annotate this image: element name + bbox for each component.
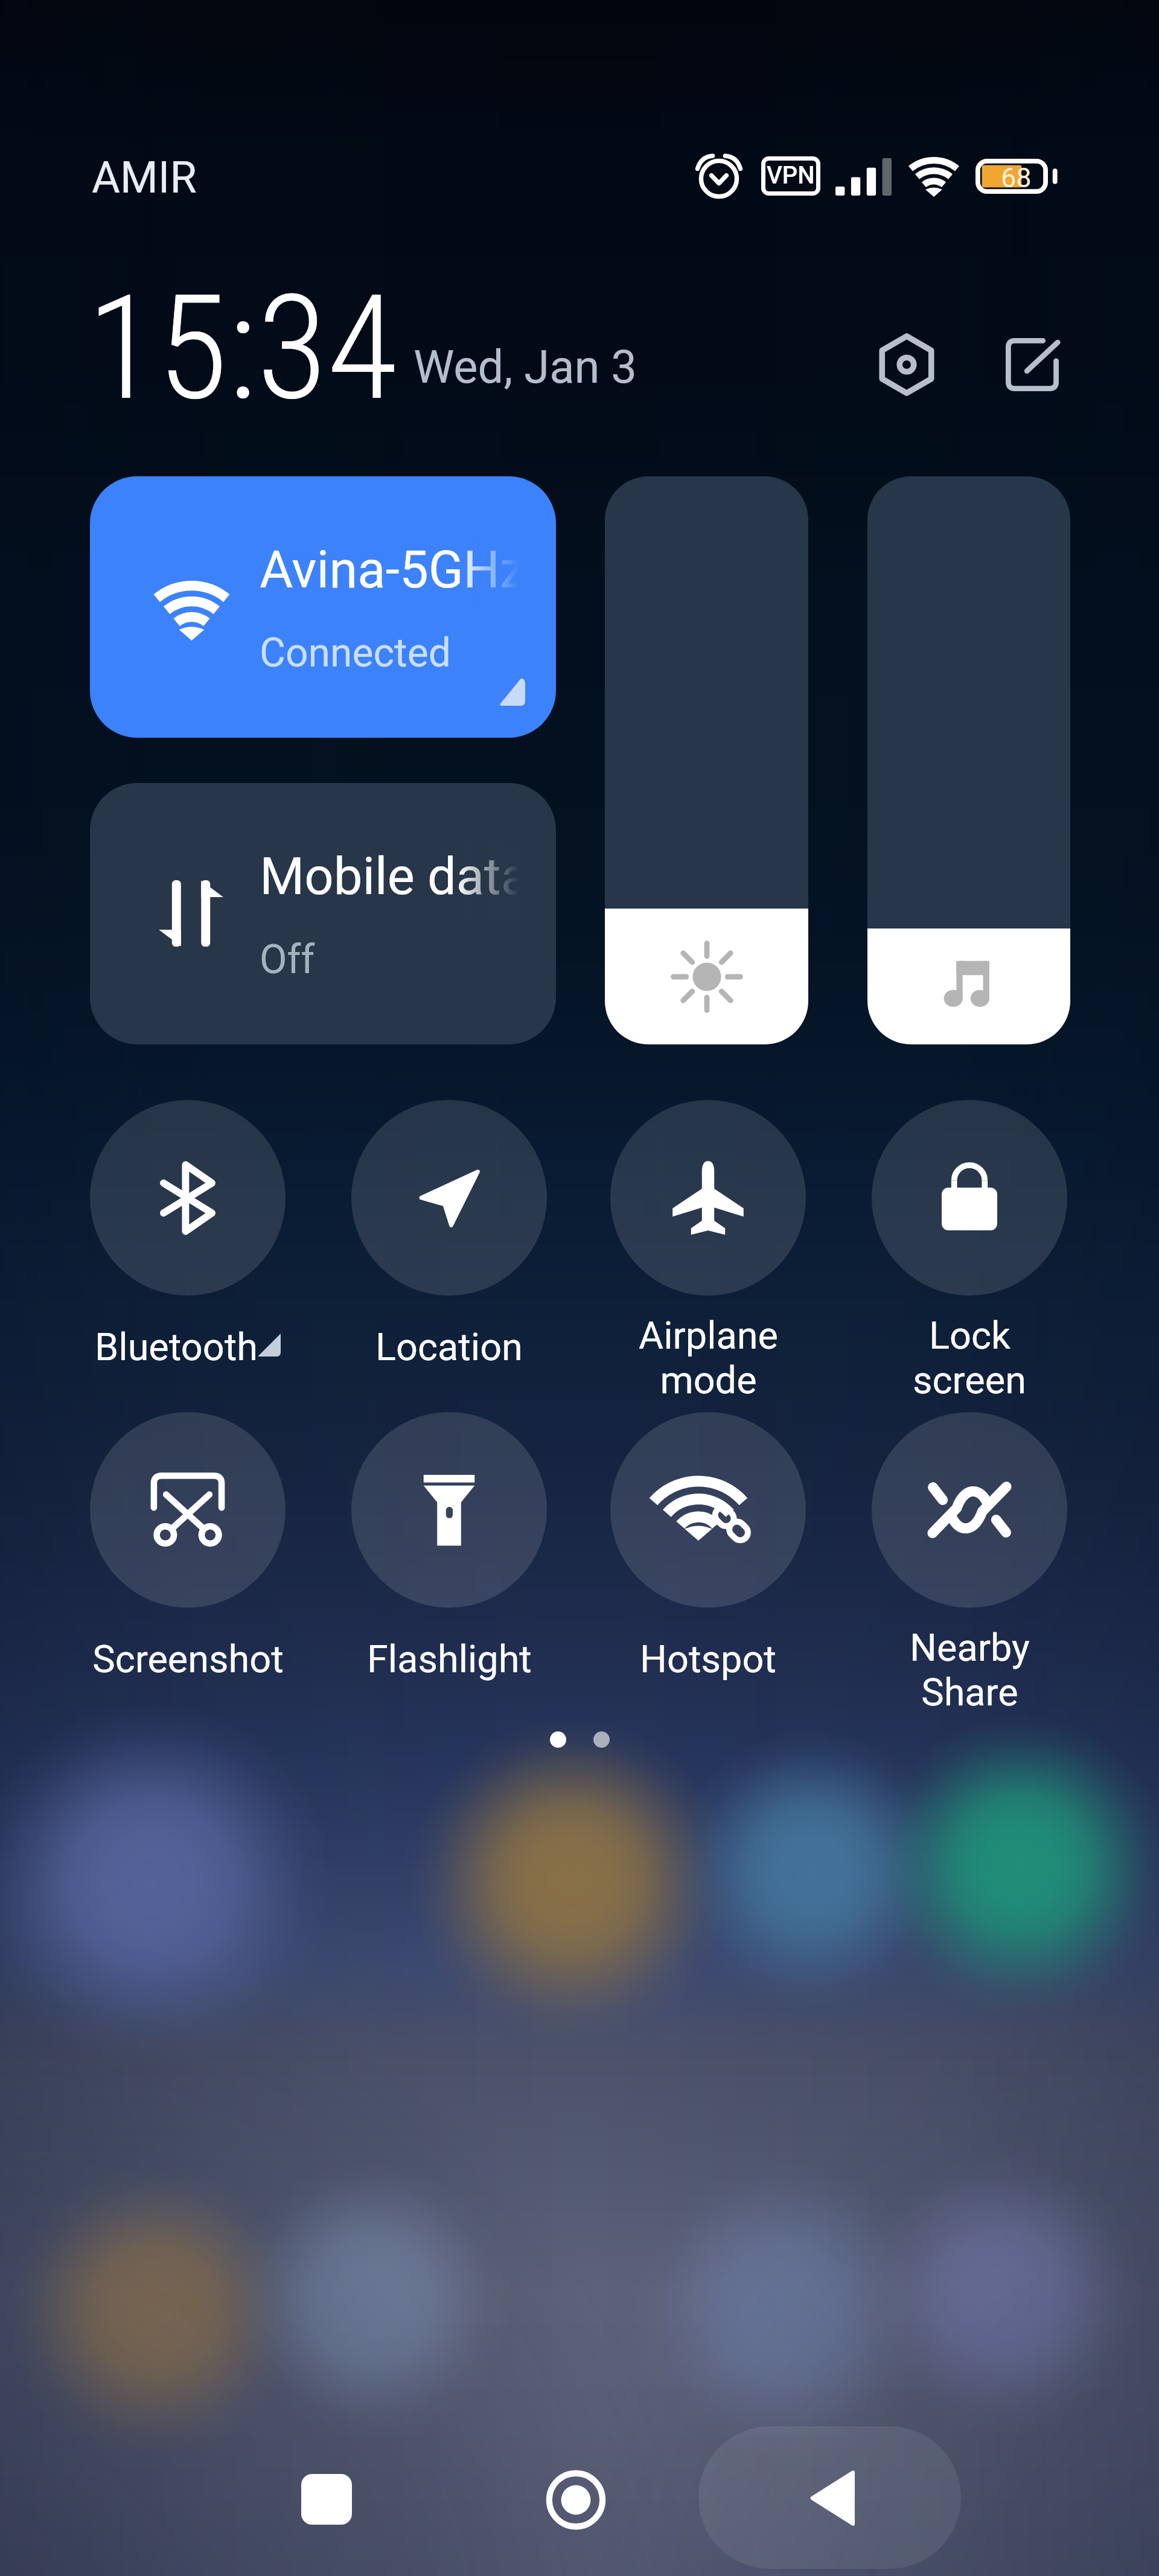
button[interactable]: Edit (986, 319, 1078, 411)
button[interactable]: Flashlight (316, 1412, 582, 1682)
button[interactable]: Lock (837, 1100, 1102, 1403)
staticText: mode (660, 1358, 757, 1403)
staticText: Wed, Jan 3 (413, 340, 637, 394)
staticText: Screenshot (92, 1637, 284, 1682)
button[interactable]: Back (784, 2450, 880, 2546)
staticText: Avina-5GHz (260, 540, 519, 600)
button[interactable]: Recent apps (278, 2451, 375, 2548)
staticText: Connected (260, 630, 451, 676)
button[interactable] (867, 476, 1070, 1044)
staticText: 68 (1001, 162, 1032, 194)
staticText: Hotspot (640, 1637, 776, 1682)
staticText: Nearby (910, 1626, 1030, 1670)
staticText: screen (913, 1358, 1026, 1403)
staticText: AMIR (92, 152, 197, 203)
staticText: Mobile data (260, 846, 519, 907)
button[interactable]: Avina-5GHz (90, 476, 556, 738)
staticText: Airplane (639, 1314, 778, 1358)
staticText: 15:34 (87, 263, 398, 433)
staticText: Location (375, 1325, 523, 1370)
staticText: Share (921, 1670, 1018, 1715)
button[interactable] (605, 476, 808, 1044)
staticText: VPN (767, 161, 815, 190)
staticText: Flashlight (367, 1637, 532, 1682)
staticText: Bluetooth (95, 1325, 258, 1370)
staticText: Off (260, 936, 315, 983)
button[interactable]: Screenshot (55, 1412, 321, 1682)
button[interactable]: Hotspot (575, 1412, 841, 1682)
button[interactable]: Mobile data (90, 783, 556, 1044)
button[interactable]: Nearby (837, 1412, 1102, 1715)
button[interactable]: Bluetooth (55, 1100, 321, 1370)
button[interactable]: Location (316, 1100, 582, 1370)
button[interactable]: Settings (861, 319, 953, 411)
button[interactable]: Airplane (575, 1100, 841, 1403)
button[interactable]: Home (528, 2452, 624, 2548)
staticText: Lock (929, 1314, 1011, 1358)
